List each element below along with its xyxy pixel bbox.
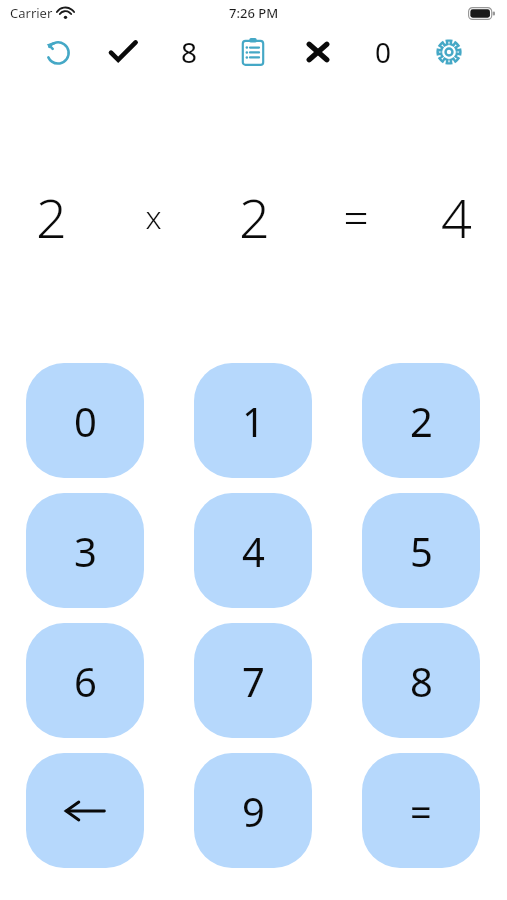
staticText: 3 [74, 524, 97, 578]
button[interactable]: Results list [227, 26, 279, 78]
staticText: 5 [410, 524, 433, 578]
staticText: 4 [242, 524, 265, 578]
button[interactable]: 8 [362, 623, 480, 738]
button[interactable]: 6 [26, 623, 144, 738]
button[interactable]: Backspace [26, 753, 144, 868]
button[interactable]: 9 [194, 753, 312, 868]
button[interactable]: 0 [357, 26, 409, 78]
staticText: 4 [441, 180, 472, 254]
staticText: 2 [410, 394, 433, 448]
staticText: = [410, 785, 432, 837]
button[interactable]: 5 [362, 493, 480, 608]
button[interactable] [292, 26, 344, 78]
button[interactable]: Reset [32, 26, 84, 78]
staticText: 0 [375, 33, 392, 71]
staticText: 0 [74, 394, 97, 448]
staticText: x [145, 195, 162, 239]
button[interactable]: = [362, 753, 480, 868]
button[interactable]: Settings [423, 26, 475, 78]
staticText: Carrier [10, 4, 53, 22]
button[interactable]: 0 [26, 363, 144, 478]
button[interactable]: 7 [194, 623, 312, 738]
staticText: 8 [181, 33, 198, 71]
button[interactable]: 3 [26, 493, 144, 608]
staticText: 6 [74, 654, 97, 708]
staticText: 7 [242, 654, 265, 708]
staticText: 1 [242, 394, 265, 448]
button[interactable] [97, 26, 149, 78]
button[interactable]: 2 [362, 363, 480, 478]
staticText: 8 [410, 654, 433, 708]
staticText: 9 [242, 784, 265, 838]
staticText: = [343, 187, 369, 247]
staticText: 2 [36, 180, 67, 254]
button[interactable]: 4 [194, 493, 312, 608]
staticText: 2 [239, 180, 270, 254]
button[interactable]: 1 [194, 363, 312, 478]
staticText: 7:26 PM [229, 4, 279, 22]
button[interactable]: 8 [163, 26, 215, 78]
